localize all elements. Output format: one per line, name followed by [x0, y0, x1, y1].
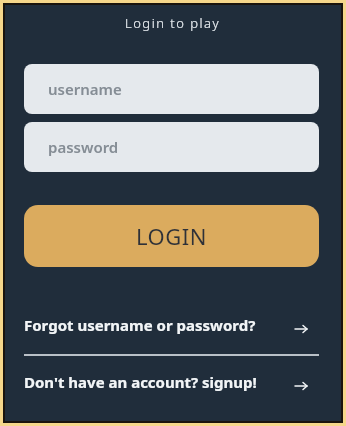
button[interactable]: LOGIN [24, 205, 319, 267]
staticText: LOGIN [136, 221, 207, 251]
staticText: Login to play [125, 14, 221, 32]
staticText: password [48, 137, 119, 157]
staticText: Don't have an account? signup! [24, 372, 257, 392]
button[interactable]: Forgot username or password? [24, 308, 319, 342]
staticText: username [48, 79, 122, 99]
button[interactable]: password [24, 122, 319, 172]
button[interactable]: username [24, 64, 319, 114]
staticText: Forgot username or password? [24, 315, 256, 335]
button[interactable]: Don't have an account? signup! [24, 365, 319, 399]
